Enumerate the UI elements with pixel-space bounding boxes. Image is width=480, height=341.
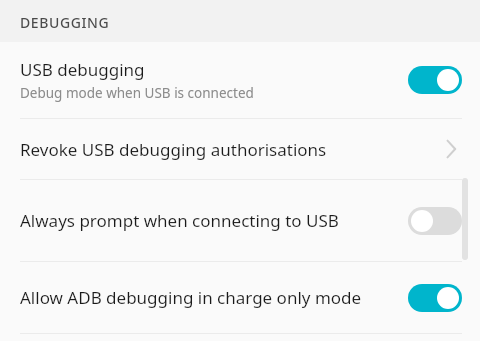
staticText: Allow ADB debugging in charge only mode xyxy=(20,286,362,309)
staticText: Always prompt when connecting to USB xyxy=(20,209,339,232)
staticText: DEBUGGING xyxy=(20,13,110,32)
button[interactable] xyxy=(404,280,466,316)
button[interactable]: Always prompt when connecting to USB xyxy=(0,180,480,261)
button[interactable]: Allow ADB debugging in charge only mode xyxy=(0,262,480,333)
staticText: Debug mode when USB is connected xyxy=(20,84,254,102)
staticText: USB debugging xyxy=(20,58,145,81)
button[interactable]: Revoke USB debugging authorisations xyxy=(0,119,480,179)
button[interactable] xyxy=(404,203,466,239)
button[interactable] xyxy=(404,62,466,98)
button[interactable]: Open revoke USB debugging authorisations xyxy=(436,134,466,164)
staticText: Revoke USB debugging authorisations xyxy=(20,138,327,161)
button[interactable]: USB debugging xyxy=(0,42,480,118)
